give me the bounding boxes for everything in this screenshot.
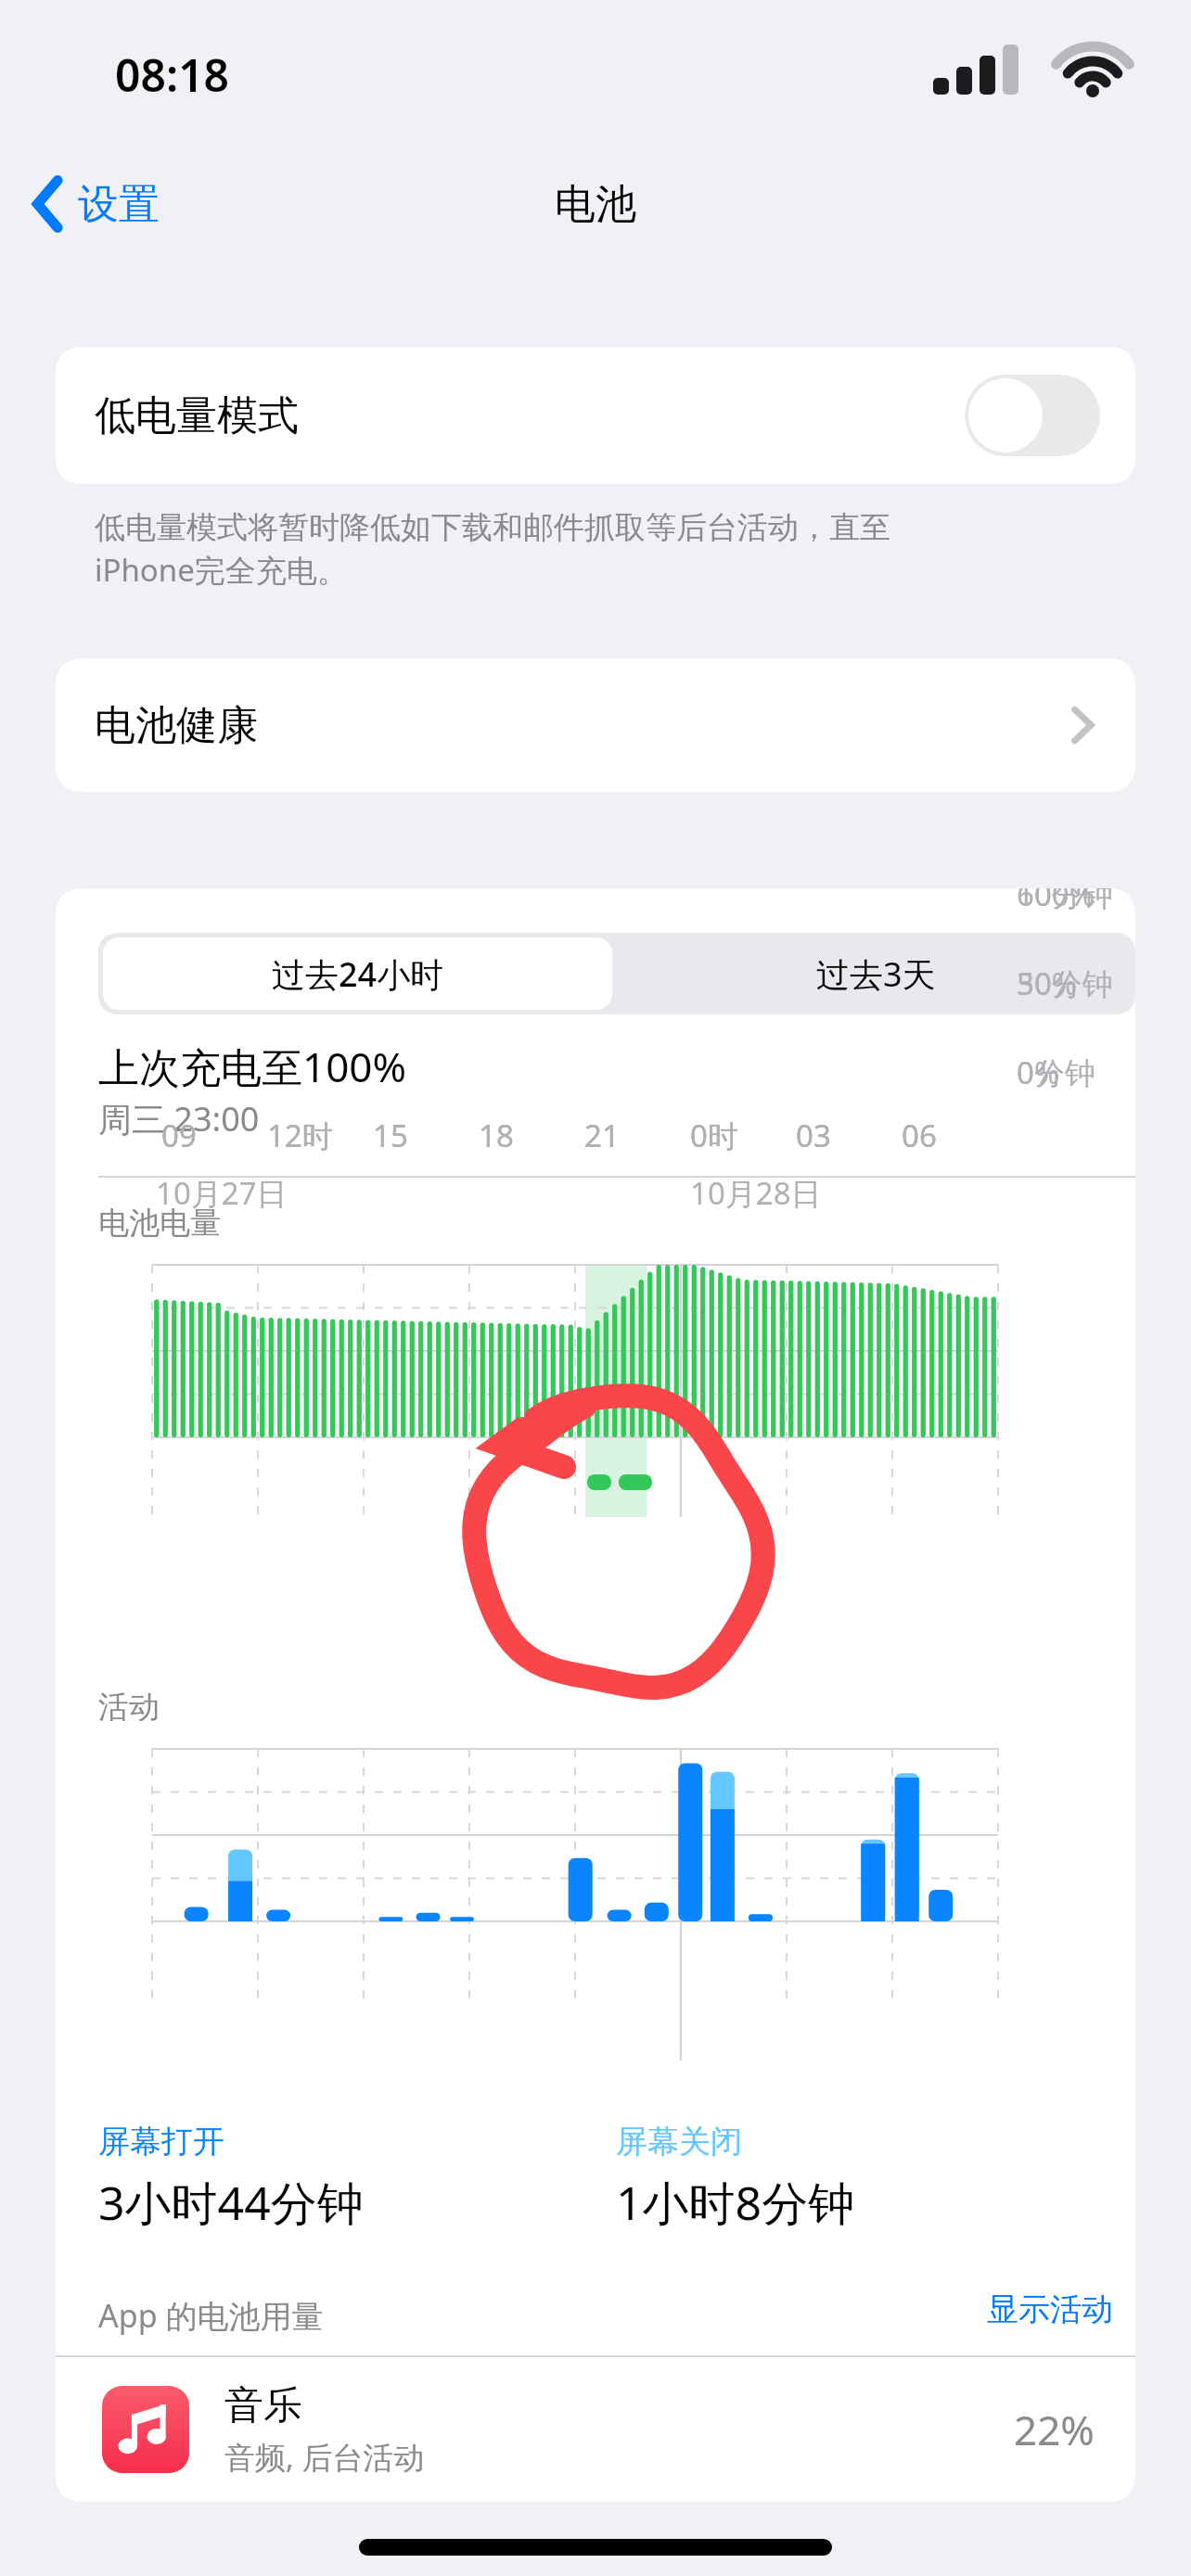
staticText: 1小时8分钟 [616, 2171, 855, 2234]
staticText: 音频, 后台活动 [224, 2436, 425, 2478]
other: 返回 设置 [32, 177, 65, 231]
staticText: 08:18 [115, 45, 230, 105]
button[interactable]: 显示活动 [946, 2279, 1113, 2339]
staticText: 0分钟 [1017, 1052, 1095, 1093]
staticText: 周三 23:00 [98, 1096, 260, 1141]
staticText: 22% [1014, 2402, 1095, 2457]
staticText: 21 [584, 1115, 620, 1156]
button[interactable]: 返回 设置 [32, 156, 160, 252]
staticText: 电池电量 [98, 1204, 221, 1243]
staticText: 09 [161, 1115, 197, 1156]
staticText: 10月27日 [156, 1172, 288, 1214]
staticText: 电池 [555, 179, 636, 230]
staticText: 60分钟 [1017, 888, 1113, 915]
staticText: 09 [161, 1115, 197, 1156]
staticText: 上次充电至100% [98, 1039, 407, 1094]
staticText: 06 [902, 1115, 937, 1156]
staticText: 18 [479, 1115, 514, 1156]
staticText: 0% [1017, 1052, 1060, 1093]
staticText: 显示活动 [987, 2289, 1113, 2329]
staticText: 100% [1017, 888, 1095, 915]
staticText: 过去3天 [816, 951, 936, 997]
button[interactable]: 低电量模式 [56, 347, 1135, 484]
staticText: 03 [796, 1115, 831, 1156]
staticText: 屏幕打开 [98, 2122, 224, 2162]
staticText: 3小时44分钟 [98, 2171, 364, 2234]
button[interactable]: 电池健康 [56, 658, 1135, 792]
staticText: 低电量模式 [95, 390, 299, 441]
staticText: 15 [373, 1115, 408, 1156]
staticText: 15 [373, 1115, 408, 1156]
button[interactable]: 过去24小时 [98, 933, 617, 1014]
staticText: 0时 [690, 1115, 738, 1156]
staticText: 03 [796, 1115, 831, 1156]
staticText: 设置 [78, 179, 160, 230]
staticText: 10月28日 [690, 1172, 822, 1214]
staticText: 21 [584, 1115, 620, 1156]
staticText: App 的电池用量 [98, 2294, 324, 2337]
staticText: 18 [479, 1115, 514, 1156]
button[interactable]: 音乐 [56, 2357, 1135, 2502]
staticText: 电池健康 [95, 700, 258, 751]
staticText: 06 [902, 1115, 937, 1156]
staticText: 低电量模式将暂时降低如下载和邮件抓取等后台活动，直至 iPhone完全充电。 [95, 508, 1133, 591]
button[interactable]: 低电量模式 开关 [965, 375, 1100, 456]
staticText: 过去24小时 [272, 951, 444, 997]
staticText: 屏幕关闭 [616, 2122, 742, 2162]
staticText: 0时 [690, 1115, 738, 1156]
button[interactable]: 过去3天 [617, 933, 1135, 1014]
staticText: 12时 [267, 1115, 333, 1156]
staticText: 音乐 [224, 2381, 302, 2430]
staticText: 活动 [98, 1688, 160, 1727]
staticText: 30分钟 [1017, 963, 1113, 1004]
staticText: 50% [1017, 963, 1078, 1004]
staticText: 12时 [267, 1115, 333, 1156]
